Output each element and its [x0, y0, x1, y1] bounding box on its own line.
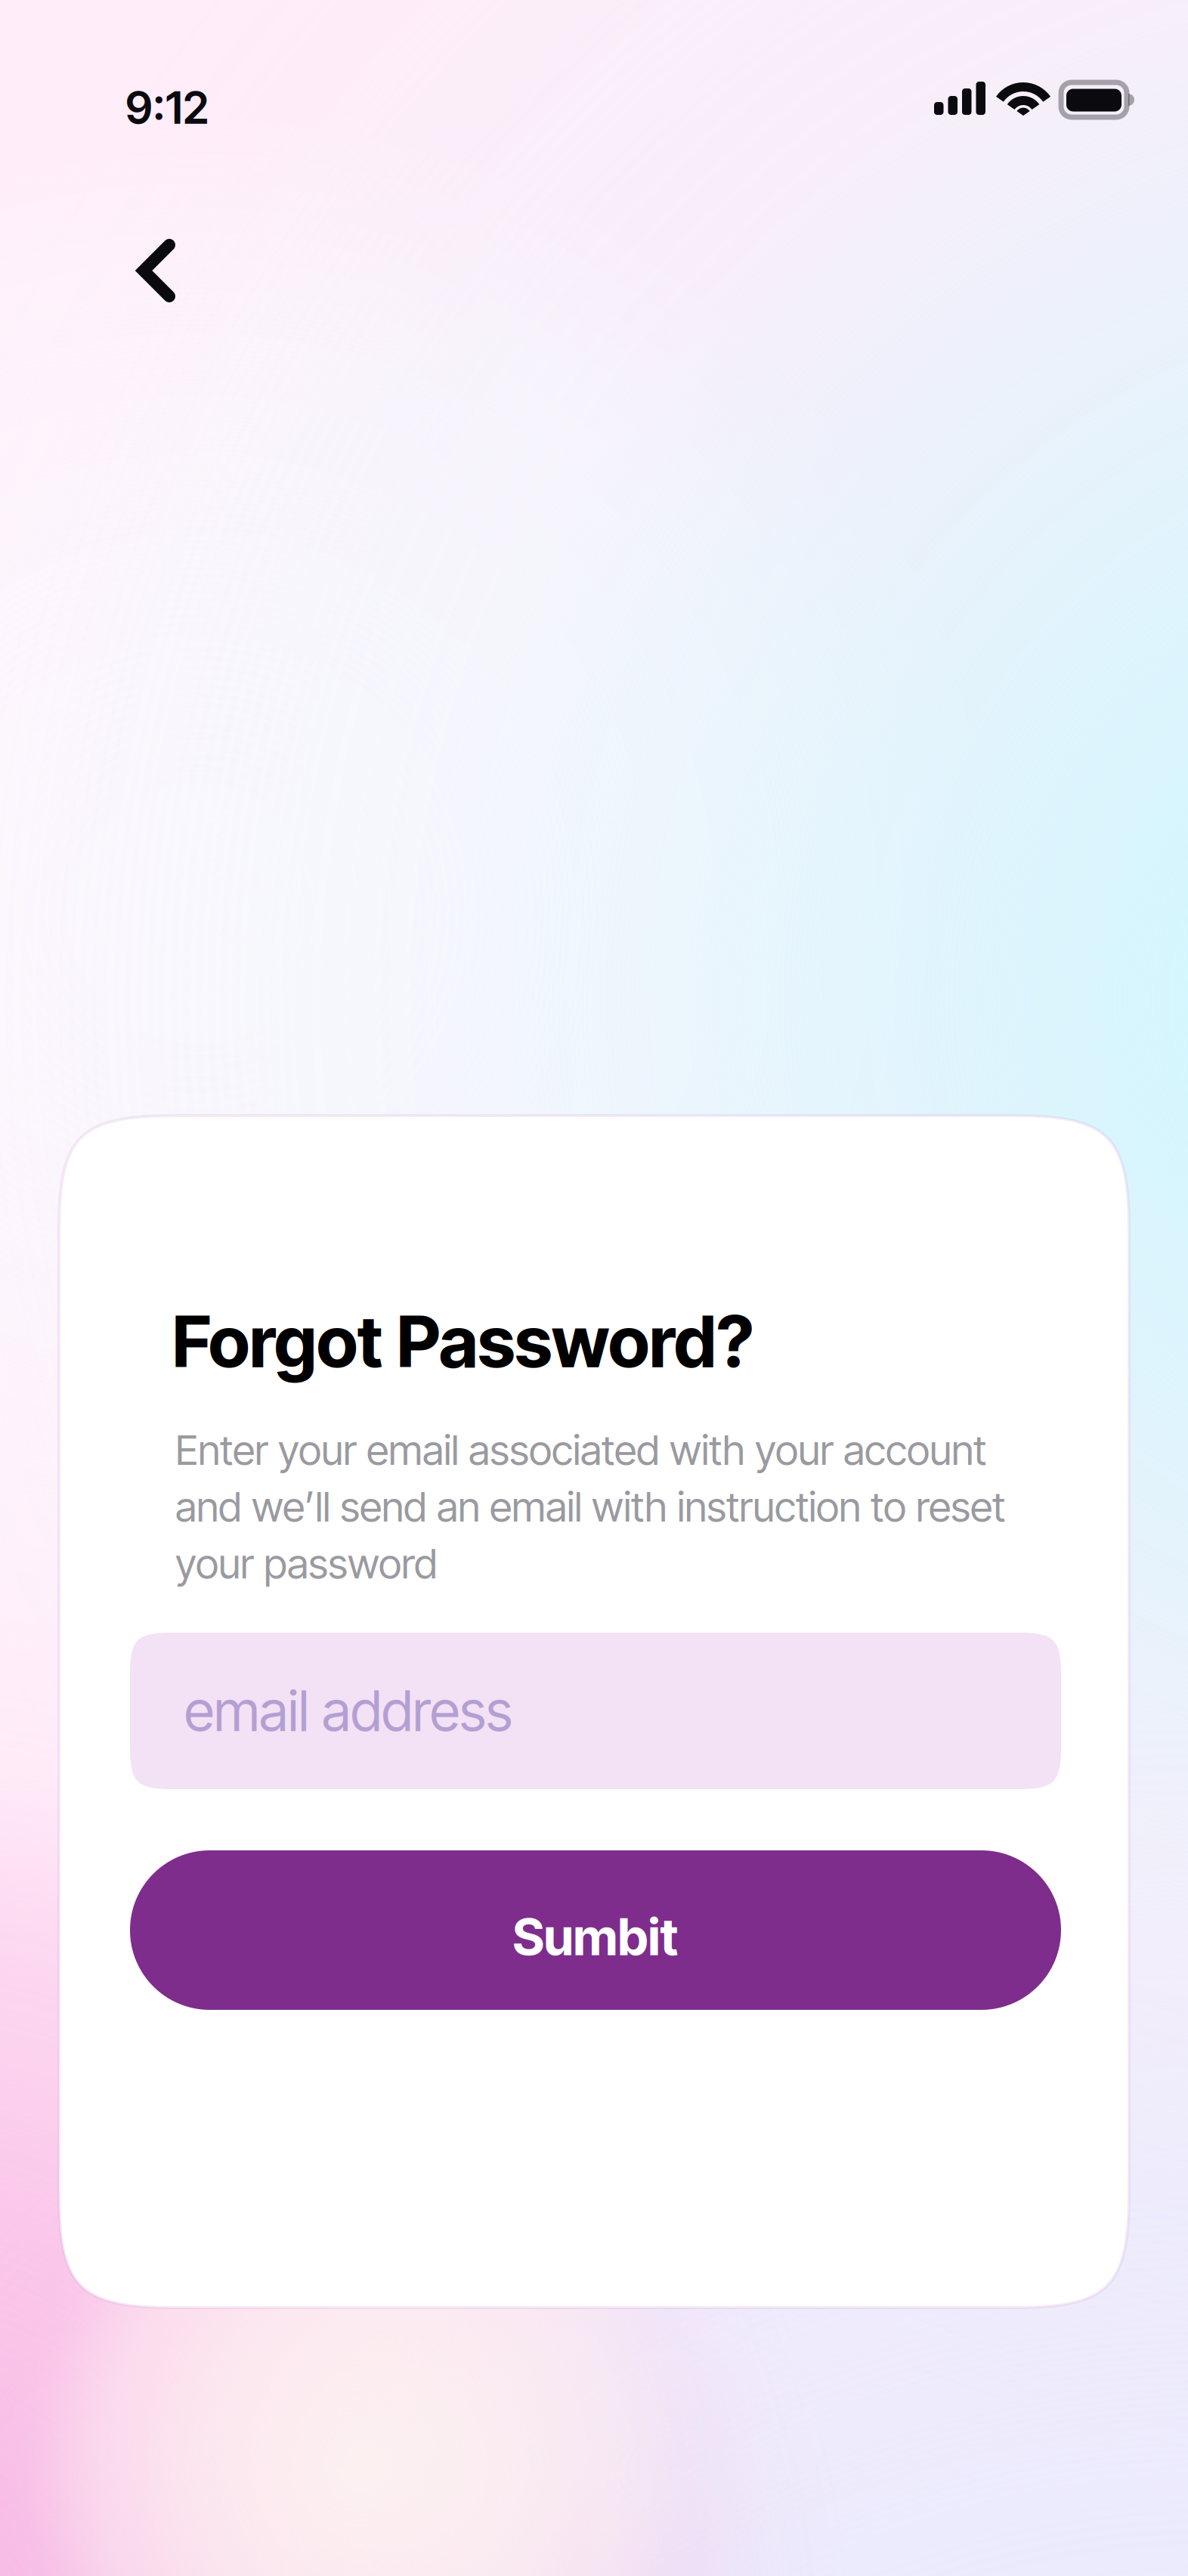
staticText: 9:12 [125, 81, 209, 135]
button[interactable]: Back [119, 222, 192, 319]
staticText: email address [184, 1677, 512, 1744]
staticText: Sumbit [513, 1906, 678, 1967]
staticText: Enter your email associated with your ac… [175, 1425, 1005, 1588]
button[interactable]: Sumbit [130, 1850, 1061, 2010]
staticText: Forgot Password? [172, 1299, 753, 1384]
button[interactable]: email address [130, 1633, 1061, 1789]
